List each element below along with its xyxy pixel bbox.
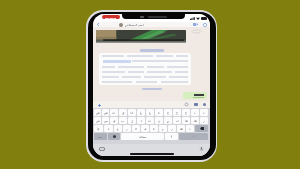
- button[interactable]: ر: [123, 125, 131, 132]
- button[interactable]: ق: [119, 109, 127, 116]
- staticText: ي: [113, 119, 116, 123]
- staticText: و: [162, 127, 164, 131]
- button[interactable]: ن: [155, 117, 163, 124]
- button[interactable]: Voice call: [202, 22, 208, 27]
- staticText: 123: [98, 135, 103, 138]
- button[interactable]: ح: [173, 109, 181, 116]
- button[interactable]: غ: [137, 109, 145, 116]
- button[interactable]: م: [164, 117, 172, 124]
- button[interactable]: لا: [132, 125, 140, 132]
- button[interactable]: د: [191, 109, 199, 116]
- button[interactable]: د: [186, 125, 194, 132]
- button[interactable]: ا: [137, 117, 145, 124]
- staticText: ة: [153, 127, 155, 131]
- button[interactable]: ث: [110, 109, 118, 116]
- staticText: ط: [185, 119, 188, 123]
- button[interactable]: ت: [146, 117, 154, 124]
- staticText: ↑: [170, 135, 173, 139]
- button[interactable]: ظ: [177, 125, 185, 132]
- button[interactable]: ص: [102, 109, 109, 116]
- staticText: ك: [176, 119, 179, 123]
- staticText: د: [189, 127, 191, 131]
- staticText: ع: [149, 111, 151, 115]
- button[interactable]: ل: [128, 117, 136, 124]
- staticText: ئ: [97, 127, 100, 131]
- staticText: ج: [185, 111, 188, 115]
- button[interactable]: Sticker: [184, 102, 189, 107]
- staticText: ش: [96, 119, 100, 123]
- staticText: ء: [108, 127, 110, 131]
- staticText: د: [194, 111, 196, 115]
- button[interactable]: ي: [110, 117, 118, 124]
- button[interactable]: ه: [155, 109, 163, 116]
- button[interactable]: مسافة: [121, 133, 164, 140]
- button[interactable]: ط: [182, 117, 190, 124]
- button[interactable]: Dictation: [198, 146, 204, 151]
- button[interactable]: خ: [164, 109, 172, 116]
- staticText: ح: [176, 111, 179, 115]
- staticText: ض: [96, 111, 100, 115]
- staticText: س: [104, 119, 108, 123]
- staticText: ث: [112, 111, 116, 115]
- staticText: ص: [104, 111, 108, 115]
- button[interactable]: ↑: [165, 133, 178, 140]
- button[interactable]: س: [102, 117, 109, 124]
- button[interactable]: ء: [104, 125, 113, 132]
- staticText: ت: [148, 119, 152, 123]
- button[interactable]: ع: [146, 109, 154, 116]
- button[interactable]: 123: [94, 133, 107, 140]
- button[interactable]: Voice message: [202, 102, 207, 107]
- button[interactable]: ذ: [200, 109, 208, 116]
- staticText: ى: [144, 127, 147, 131]
- button[interactable]: و: [159, 125, 167, 132]
- button[interactable]: Emoji keyboard: [98, 146, 106, 151]
- staticText: ز: [203, 119, 205, 123]
- staticText: مسافة: [139, 135, 147, 138]
- staticText: ظ: [194, 119, 197, 123]
- button[interactable]: ى: [141, 125, 149, 132]
- staticText: ز: [171, 127, 173, 131]
- button[interactable]: ك: [173, 117, 181, 124]
- staticText: ظ: [180, 127, 183, 131]
- staticText: خ: [167, 111, 170, 115]
- staticText: ف: [130, 111, 134, 115]
- staticText: ل: [131, 119, 134, 123]
- staticText: غ: [140, 111, 142, 115]
- button[interactable]: ز: [168, 125, 176, 132]
- button[interactable]: ز: [200, 117, 208, 124]
- staticText: ذ: [203, 111, 205, 115]
- staticText: ا: [141, 119, 142, 123]
- button[interactable]: Back: [95, 22, 100, 27]
- button[interactable]: ض: [94, 109, 101, 116]
- button[interactable]: ج: [182, 109, 190, 116]
- button[interactable]: Attach: [96, 102, 102, 108]
- staticText: ب: [121, 119, 125, 123]
- staticText: اسم المستخدم: [125, 23, 144, 27]
- button[interactable]: ب: [119, 117, 127, 124]
- button[interactable]: ف: [128, 109, 136, 116]
- staticText: لا: [135, 127, 137, 131]
- staticText: ر: [126, 127, 128, 131]
- button[interactable]: ظ: [191, 117, 199, 124]
- staticText: م: [167, 119, 169, 123]
- button[interactable]: Video call: [192, 22, 198, 27]
- staticText: ن: [158, 119, 161, 123]
- button[interactable]: Emoji: [108, 133, 120, 140]
- staticText: ق: [122, 111, 125, 115]
- button[interactable]: Camera: [193, 102, 198, 107]
- staticText: ؤ: [117, 127, 119, 131]
- button[interactable]: ئ: [94, 125, 103, 132]
- staticText: ه: [158, 111, 160, 115]
- staticText: إدخال: [191, 135, 197, 138]
- button[interactable]: ؤ: [114, 125, 122, 132]
- button[interactable]: ة: [150, 125, 158, 132]
- staticText: REC 00:15: [105, 16, 117, 19]
- button[interactable]: Backspace: [195, 125, 208, 132]
- button[interactable]: ش: [94, 117, 101, 124]
